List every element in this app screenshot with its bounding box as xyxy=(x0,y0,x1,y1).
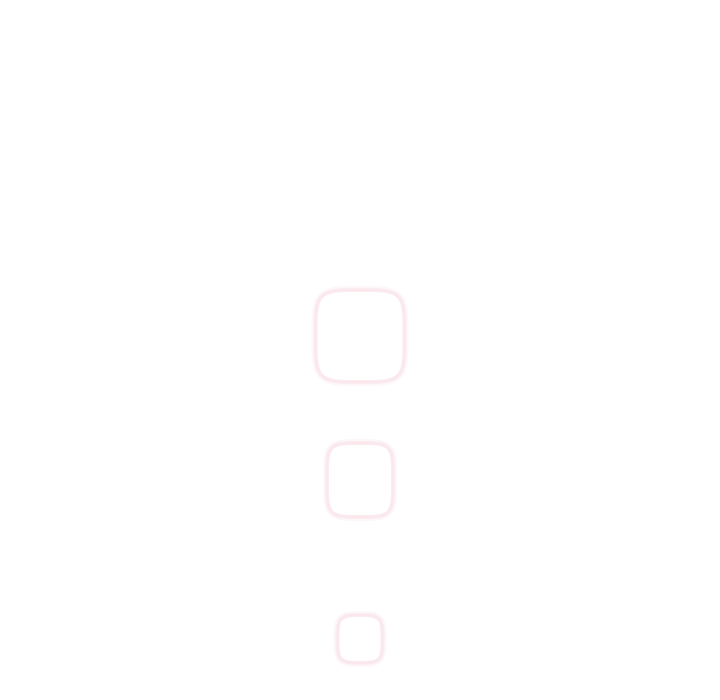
button[interactable]: Medium icon xyxy=(324,440,396,520)
button[interactable]: Small icon xyxy=(334,612,385,666)
button[interactable]: Large icon xyxy=(312,287,407,385)
